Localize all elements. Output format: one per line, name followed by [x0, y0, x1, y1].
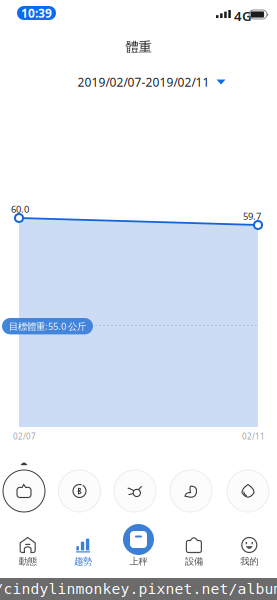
staticText: 4G: [234, 7, 252, 25]
button[interactable]: 體脂率: [114, 470, 156, 512]
staticText: /cindylinmonkey.pixnet.net/album: [0, 580, 277, 598]
button[interactable]: 水分: [227, 470, 269, 512]
button[interactable]: 動態: [0, 520, 55, 576]
button[interactable]: 上秤: [111, 520, 166, 576]
button[interactable]: 肌肉量: [170, 470, 212, 512]
button[interactable]: 趨勢: [55, 520, 111, 576]
staticText: 上秤: [129, 556, 147, 567]
button[interactable]: 體重: [3, 470, 45, 512]
staticText: 60.0: [11, 203, 29, 215]
staticText: 動態: [19, 556, 37, 567]
staticText: 設備: [185, 556, 203, 567]
staticText: 體重: [125, 39, 151, 55]
staticText: 10:39: [21, 5, 52, 21]
staticText: 我的: [240, 556, 258, 567]
staticText: 02/07: [13, 431, 36, 442]
staticText: 02/11: [242, 431, 265, 442]
staticText: 59.7: [243, 210, 261, 222]
button[interactable]: 2019/02/07-2019/02/11: [13, 72, 277, 92]
button[interactable]: 設備: [166, 520, 222, 576]
button[interactable]: BMI: [58, 470, 100, 512]
staticText: 目標體重:55.0 公斤: [9, 320, 86, 332]
staticText: 趨勢: [74, 556, 92, 567]
button[interactable]: 我的: [222, 520, 277, 576]
staticText: 2019/02/07-2019/02/11: [77, 74, 209, 90]
